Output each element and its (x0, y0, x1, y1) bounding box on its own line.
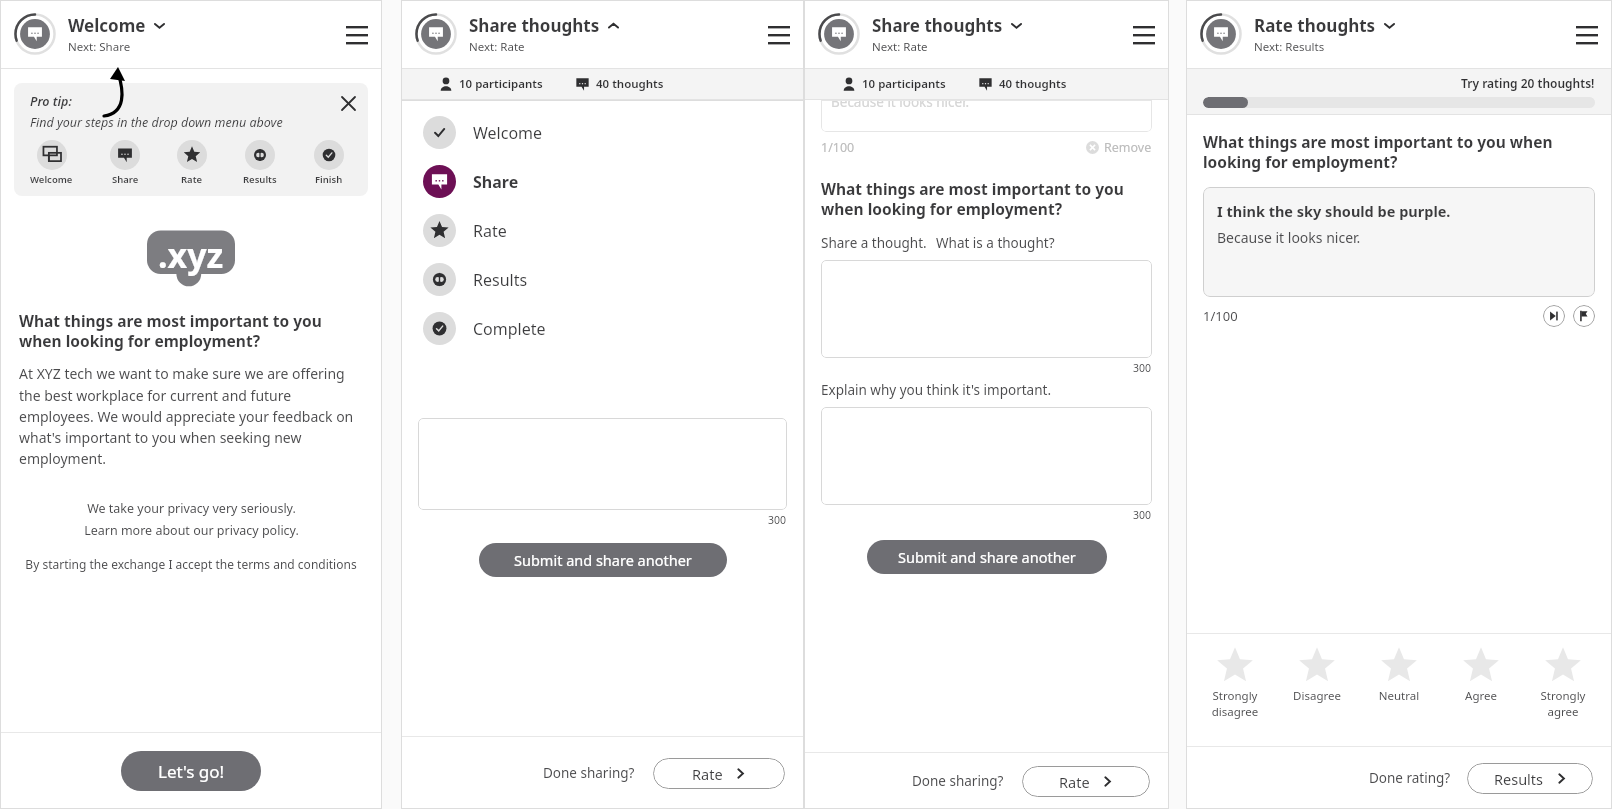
button[interactable]: Share (110, 140, 140, 186)
staticText: What things are most important to you wh… (1203, 131, 1595, 173)
staticText: Share a thought. (821, 234, 927, 252)
button[interactable] (821, 260, 1152, 358)
staticText: At XYZ tech we want to make sure we are … (19, 364, 363, 468)
staticText: I think the sky should be purple. (1217, 201, 1451, 221)
staticText: 300 (1133, 361, 1152, 375)
button[interactable]: Disagree (1276, 634, 1358, 704)
staticText: Find your steps in the drop down menu ab… (30, 114, 283, 131)
button[interactable]: Menu (340, 17, 374, 51)
button[interactable]: Flag (1573, 305, 1595, 327)
button[interactable]: Welcome (401, 108, 804, 157)
button[interactable]: Close (338, 93, 358, 113)
staticText: Next: Results (1254, 39, 1325, 55)
button[interactable]: Menu (1127, 17, 1161, 51)
staticText: Submit and share another (514, 550, 692, 570)
button[interactable]: Learn more about our privacy policy. (84, 522, 299, 539)
staticText: Strongly agree (1522, 688, 1604, 719)
staticText: Pro tip: (30, 93, 72, 110)
staticText: Because it looks nicer. (1217, 228, 1361, 247)
button[interactable]: Results (401, 255, 804, 304)
button[interactable] (821, 407, 1152, 505)
staticText: Next: Rate (469, 39, 525, 55)
staticText: Share thoughts (872, 14, 1003, 37)
button[interactable]: Rate (401, 206, 804, 255)
button[interactable]: Welcome (68, 14, 340, 55)
button[interactable]: What is a thought? (936, 234, 1055, 252)
button[interactable]: Menu (1570, 17, 1604, 51)
staticText: Share (112, 173, 139, 186)
staticText: Results (1494, 769, 1544, 789)
button[interactable]: Rate (1022, 766, 1150, 797)
button[interactable]: Results (243, 140, 277, 186)
button[interactable]: Menu (762, 17, 796, 51)
button[interactable]: Let's go! (121, 751, 261, 791)
staticText: Neutral (1358, 688, 1440, 704)
staticText: Done sharing? (912, 772, 1004, 790)
staticText: Results (473, 269, 528, 291)
button[interactable]: Strongly agree (1522, 634, 1604, 719)
staticText: 10 participants (862, 76, 946, 92)
staticText: 10 participants (459, 76, 543, 92)
staticText: 1/100 (1203, 307, 1238, 325)
staticText: What things are most important to you wh… (19, 310, 363, 352)
staticText: By starting the exchange I accept the te… (25, 556, 357, 572)
staticText: Try rating 20 thoughts! (1461, 75, 1595, 91)
button[interactable]: Submit and share another (867, 540, 1107, 574)
button[interactable]: Strongly disagree (1194, 634, 1276, 719)
staticText: Strongly disagree (1194, 688, 1276, 719)
staticText: What things are most important to you wh… (821, 178, 1152, 220)
staticText: Finish (315, 173, 343, 186)
button[interactable]: Rate (653, 758, 785, 789)
button[interactable]: Welcome (30, 140, 73, 186)
button[interactable]: Share thoughts (469, 14, 762, 55)
staticText: Results (243, 173, 277, 186)
staticText: Because it looks nicer. (831, 100, 970, 111)
staticText: Welcome (30, 173, 73, 186)
staticText: What is a thought? (936, 234, 1055, 252)
staticText: 1/100 (821, 139, 855, 156)
staticText: Agree (1440, 688, 1522, 704)
staticText: Submit and share another (898, 547, 1076, 567)
staticText: Next: Rate (872, 39, 928, 55)
button[interactable]: Results (1467, 763, 1593, 794)
staticText: Welcome (68, 14, 146, 37)
button[interactable]: I think the sky should be purple. (1203, 187, 1595, 297)
staticText: Welcome (473, 122, 543, 144)
button[interactable] (418, 418, 787, 510)
button[interactable]: Agree (1440, 634, 1522, 704)
button[interactable]: Rate thoughts (1254, 14, 1570, 55)
staticText: Disagree (1276, 688, 1358, 704)
staticText: Explain why you think it's important. (821, 381, 1052, 399)
button[interactable]: Rate (177, 140, 207, 186)
staticText: Next: Share (68, 39, 131, 55)
staticText: Done sharing? (543, 764, 635, 782)
staticText: Done rating? (1369, 769, 1451, 787)
staticText: Rate (181, 173, 203, 186)
button[interactable]: Share (401, 157, 804, 206)
staticText: Complete (473, 318, 546, 340)
staticText: 40 thoughts (596, 76, 664, 92)
staticText: Rate (1059, 772, 1090, 792)
staticText: Learn more about our privacy policy. (84, 522, 299, 539)
button[interactable]: Complete (401, 304, 804, 353)
staticText: Let's go! (158, 760, 225, 783)
staticText: Rate thoughts (1254, 14, 1376, 37)
staticText: We take your privacy very seriously. (87, 500, 296, 517)
button[interactable]: Finish (314, 140, 344, 186)
staticText: 300 (1133, 508, 1152, 522)
staticText: 300 (768, 513, 787, 527)
button[interactable]: Skip (1543, 305, 1565, 327)
staticText: Share (473, 171, 519, 193)
button[interactable]: Submit and share another (479, 543, 727, 577)
button[interactable]: Share thoughts (872, 14, 1127, 55)
staticText: Remove (1104, 139, 1152, 156)
staticText: Share thoughts (469, 14, 600, 37)
button[interactable]: Remove (1086, 139, 1152, 156)
staticText: Rate (473, 220, 507, 242)
staticText: Rate (692, 764, 723, 784)
staticText: 40 thoughts (999, 76, 1067, 92)
staticText: .xyz (158, 232, 224, 278)
button[interactable]: Neutral (1358, 634, 1440, 704)
